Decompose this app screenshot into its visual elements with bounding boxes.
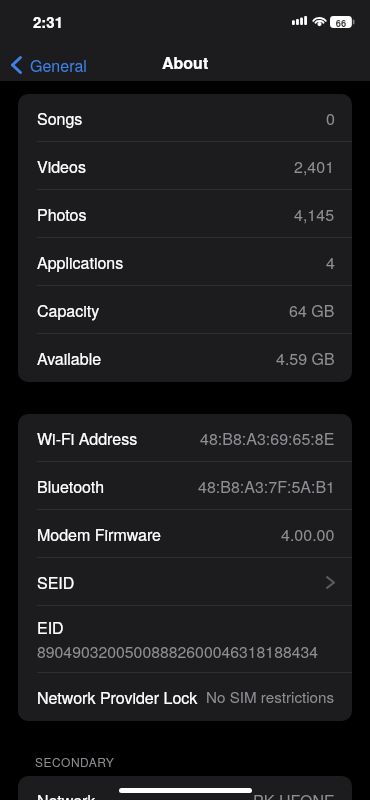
staticText: 4,145 (294, 203, 335, 226)
button[interactable]: Songs (18, 94, 352, 142)
staticText: Bluetooth (37, 475, 105, 498)
button[interactable]: Network Provider Lock (18, 673, 352, 721)
staticText: Songs (37, 107, 83, 130)
staticText: 4.59 GB (276, 347, 335, 370)
staticText: Available (37, 347, 102, 370)
button[interactable]: SEID (18, 558, 352, 606)
staticText: 4.00.00 (281, 523, 335, 546)
other: Wi-Fi (312, 16, 327, 26)
staticText: 48:B8:A3:7F:5A:B1 (198, 475, 335, 498)
staticText: Modem Firmware (37, 523, 161, 546)
button[interactable]: EID (18, 606, 352, 673)
staticText: SECONDARY (35, 753, 115, 770)
staticText: Photos (37, 203, 87, 226)
staticText: About (162, 51, 209, 74)
button[interactable]: Network (18, 776, 352, 800)
button[interactable]: Videos (18, 142, 352, 190)
staticText: Wi-Fi Address (37, 427, 138, 450)
staticText: 4 (326, 251, 335, 274)
staticText: Network Provider Lock (37, 686, 198, 709)
staticText: Videos (37, 155, 86, 178)
staticText: 2,401 (294, 155, 335, 178)
staticText: 66 (330, 16, 352, 29)
staticText: 2:31 (33, 11, 64, 32)
button[interactable]: Available (18, 334, 352, 382)
staticText: 0 (326, 107, 335, 130)
staticText: PK-UFONE (253, 789, 335, 800)
staticText: EID (37, 616, 64, 639)
staticText: No SIM restrictions (206, 686, 335, 708)
button[interactable]: Bluetooth (18, 462, 352, 510)
staticText: 64 GB (289, 299, 335, 322)
staticText: Capacity (37, 299, 100, 322)
staticText: Network (37, 789, 96, 800)
button[interactable]: Capacity (18, 286, 352, 334)
staticText: General (30, 54, 87, 77)
button[interactable]: General (11, 53, 87, 77)
staticText: 89049032005008882600046318188434 (37, 640, 319, 663)
other: Cellular signal (292, 16, 307, 25)
button[interactable]: Wi-Fi Address (18, 414, 352, 462)
staticText: Applications (37, 251, 124, 274)
button[interactable]: Modem Firmware (18, 510, 352, 558)
staticText: SEID (37, 571, 75, 594)
other: Battery 66 percent (330, 16, 354, 28)
button[interactable]: Photos (18, 190, 352, 238)
staticText: 48:B8:A3:69:65:8E (200, 427, 335, 450)
button[interactable]: Applications (18, 238, 352, 286)
